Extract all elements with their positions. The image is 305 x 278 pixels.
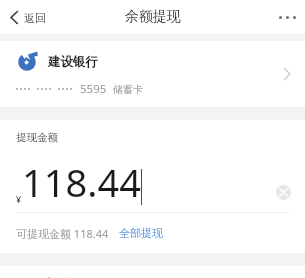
staticText: 余额提现	[125, 8, 181, 26]
staticText: 返回	[24, 11, 46, 25]
button[interactable]: 建设银行	[0, 41, 305, 107]
staticText: 全部提现	[119, 226, 163, 240]
button[interactable]: Clear amount	[276, 185, 291, 200]
button[interactable]: More options	[270, 7, 305, 28]
staticText: ¥	[16, 193, 22, 205]
staticText: 预计2小时内到账	[16, 276, 96, 278]
staticText: 118.44	[22, 156, 141, 208]
staticText: 5595	[80, 81, 107, 97]
staticText: 可提现金额 118.44	[16, 226, 109, 241]
button[interactable]: 返回	[0, 6, 54, 29]
staticText: 储蓄卡	[113, 83, 143, 96]
button[interactable]: 全部提现	[117, 224, 165, 242]
staticText: 建设银行	[48, 54, 98, 70]
staticText: 提现金额	[16, 131, 58, 144]
